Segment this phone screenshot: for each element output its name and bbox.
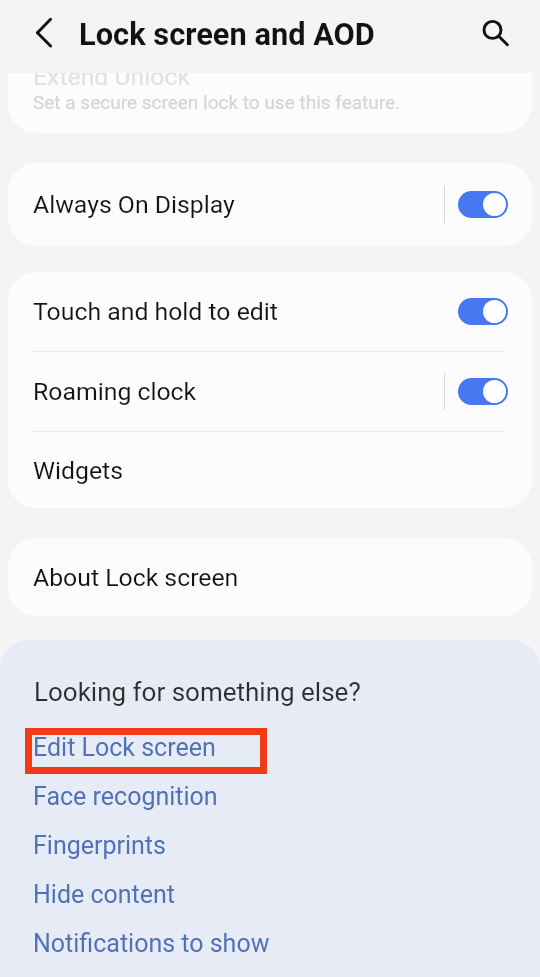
button[interactable]: Hide content: [33, 880, 176, 909]
staticText: Touch and hold to edit: [33, 297, 278, 326]
staticText: Lock screen and AOD: [79, 16, 375, 52]
button[interactable]: Toggle: [458, 298, 508, 325]
staticText: Face recognition: [33, 782, 218, 811]
staticText: Roaming clock: [33, 377, 197, 406]
staticText: Edit Lock screen: [33, 733, 216, 762]
button[interactable]: Toggle: [458, 191, 508, 218]
button[interactable]: Roaming clock: [8, 352, 532, 431]
staticText: Set a secure screen lock to use this fea…: [33, 91, 401, 113]
button[interactable]: Extend Unlock: [8, 73, 532, 133]
button[interactable]: Widgets: [8, 432, 532, 508]
button[interactable]: About Lock screen: [8, 538, 532, 616]
staticText: Extend Unlock: [33, 73, 190, 91]
button[interactable]: Search: [478, 12, 522, 56]
button[interactable]: Touch and hold to edit: [8, 272, 532, 351]
staticText: Fingerprints: [33, 831, 166, 860]
button[interactable]: Face recognition: [33, 782, 218, 811]
staticText: Looking for something else?: [34, 677, 361, 707]
staticText: About Lock screen: [33, 563, 239, 592]
button[interactable]: Toggle: [458, 378, 508, 405]
staticText: Widgets: [33, 456, 123, 485]
staticText: Always On Display: [33, 190, 235, 219]
button[interactable]: Edit Lock screen: [33, 733, 216, 762]
button[interactable]: Always On Display: [8, 163, 532, 246]
staticText: Hide content: [33, 880, 176, 909]
button[interactable]: Notifications to show: [33, 929, 270, 958]
button[interactable]: Fingerprints: [33, 831, 166, 860]
staticText: Notifications to show: [33, 929, 270, 958]
button[interactable]: Back: [22, 12, 66, 56]
